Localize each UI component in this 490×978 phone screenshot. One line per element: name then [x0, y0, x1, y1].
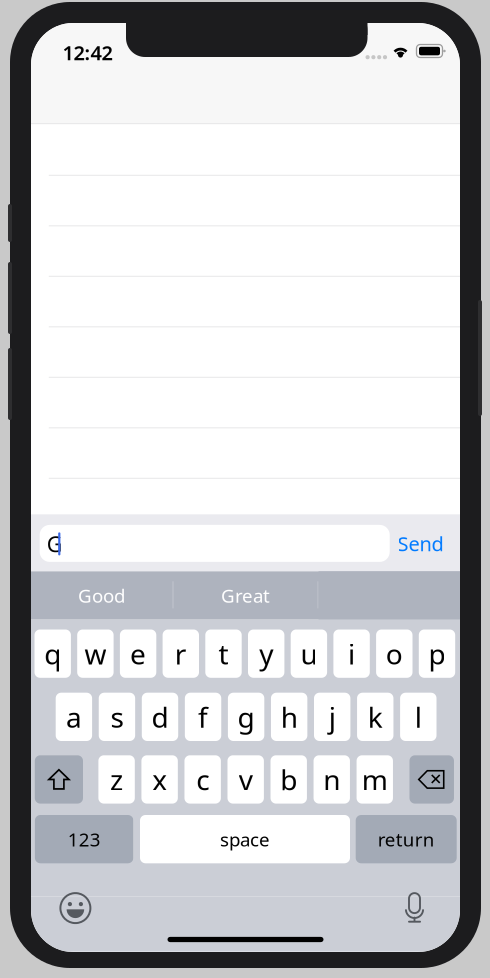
staticText: j: [329, 698, 336, 735]
staticText: f: [198, 698, 208, 735]
staticText: g: [238, 698, 255, 735]
button[interactable]: G: [40, 525, 390, 562]
button[interactable]: b: [270, 755, 307, 804]
staticText: z: [110, 761, 123, 798]
staticText: u: [300, 635, 317, 672]
button[interactable]: w: [77, 629, 114, 678]
button[interactable]: s: [99, 693, 135, 741]
staticText: w: [84, 635, 106, 672]
staticText: a: [66, 698, 82, 735]
staticText: b: [280, 761, 297, 798]
staticText: l: [415, 698, 422, 735]
staticText: i: [348, 635, 355, 672]
staticText: q: [44, 635, 61, 672]
button[interactable]: Emoji keyboard: [53, 888, 97, 928]
button[interactable]: Delete: [409, 755, 454, 804]
staticText: s: [110, 698, 123, 735]
button[interactable]: n: [314, 755, 350, 804]
button[interactable]: i: [333, 629, 370, 678]
button[interactable]: u: [291, 629, 327, 678]
button[interactable]: Good: [31, 571, 172, 620]
button[interactable]: Dictation: [392, 888, 436, 928]
staticText: 12:42: [62, 39, 112, 66]
staticText: y: [259, 635, 273, 672]
button[interactable]: q: [34, 629, 71, 678]
button[interactable]: e: [120, 629, 156, 678]
staticText: h: [281, 698, 298, 735]
staticText: k: [368, 698, 383, 735]
staticText: return: [378, 827, 435, 852]
button[interactable]: d: [142, 693, 178, 741]
staticText: G: [47, 530, 63, 558]
button[interactable]: 123: [35, 815, 133, 863]
button[interactable]: j: [314, 693, 350, 741]
button[interactable]: y: [248, 629, 284, 678]
staticText: 123: [68, 827, 101, 852]
button[interactable]: Send: [392, 525, 448, 562]
button[interactable]: x: [141, 755, 178, 804]
button[interactable]: Great: [173, 571, 317, 620]
staticText: t: [218, 635, 228, 672]
button[interactable]: k: [357, 693, 393, 741]
staticText: x: [152, 761, 167, 798]
staticText: e: [130, 635, 146, 672]
button[interactable]: g: [228, 693, 264, 741]
staticText: r: [175, 635, 187, 672]
staticText: Good: [78, 583, 125, 608]
button[interactable]: f: [185, 693, 221, 741]
button[interactable]: r: [163, 629, 199, 678]
button[interactable]: a: [56, 693, 92, 741]
button[interactable]: space: [140, 815, 350, 863]
button[interactable]: o: [376, 629, 412, 678]
button[interactable]: c: [184, 755, 221, 804]
staticText: p: [428, 635, 445, 672]
button[interactable]: h: [271, 693, 307, 741]
button[interactable]: t: [205, 629, 242, 678]
staticText: m: [362, 761, 388, 798]
button[interactable]: return: [356, 815, 457, 863]
button[interactable]: p: [419, 629, 455, 678]
button[interactable]: m: [357, 755, 393, 804]
button[interactable]: Shift: [35, 755, 83, 804]
staticText: space: [220, 827, 270, 852]
staticText: o: [386, 635, 403, 672]
button[interactable]: l: [400, 693, 436, 741]
staticText: d: [151, 698, 168, 735]
staticText: Great: [221, 583, 270, 608]
staticText: n: [323, 761, 340, 798]
staticText: Send: [397, 530, 443, 557]
button[interactable]: v: [227, 755, 264, 804]
button[interactable]: z: [98, 755, 135, 804]
staticText: v: [239, 761, 253, 798]
staticText: c: [196, 761, 209, 798]
